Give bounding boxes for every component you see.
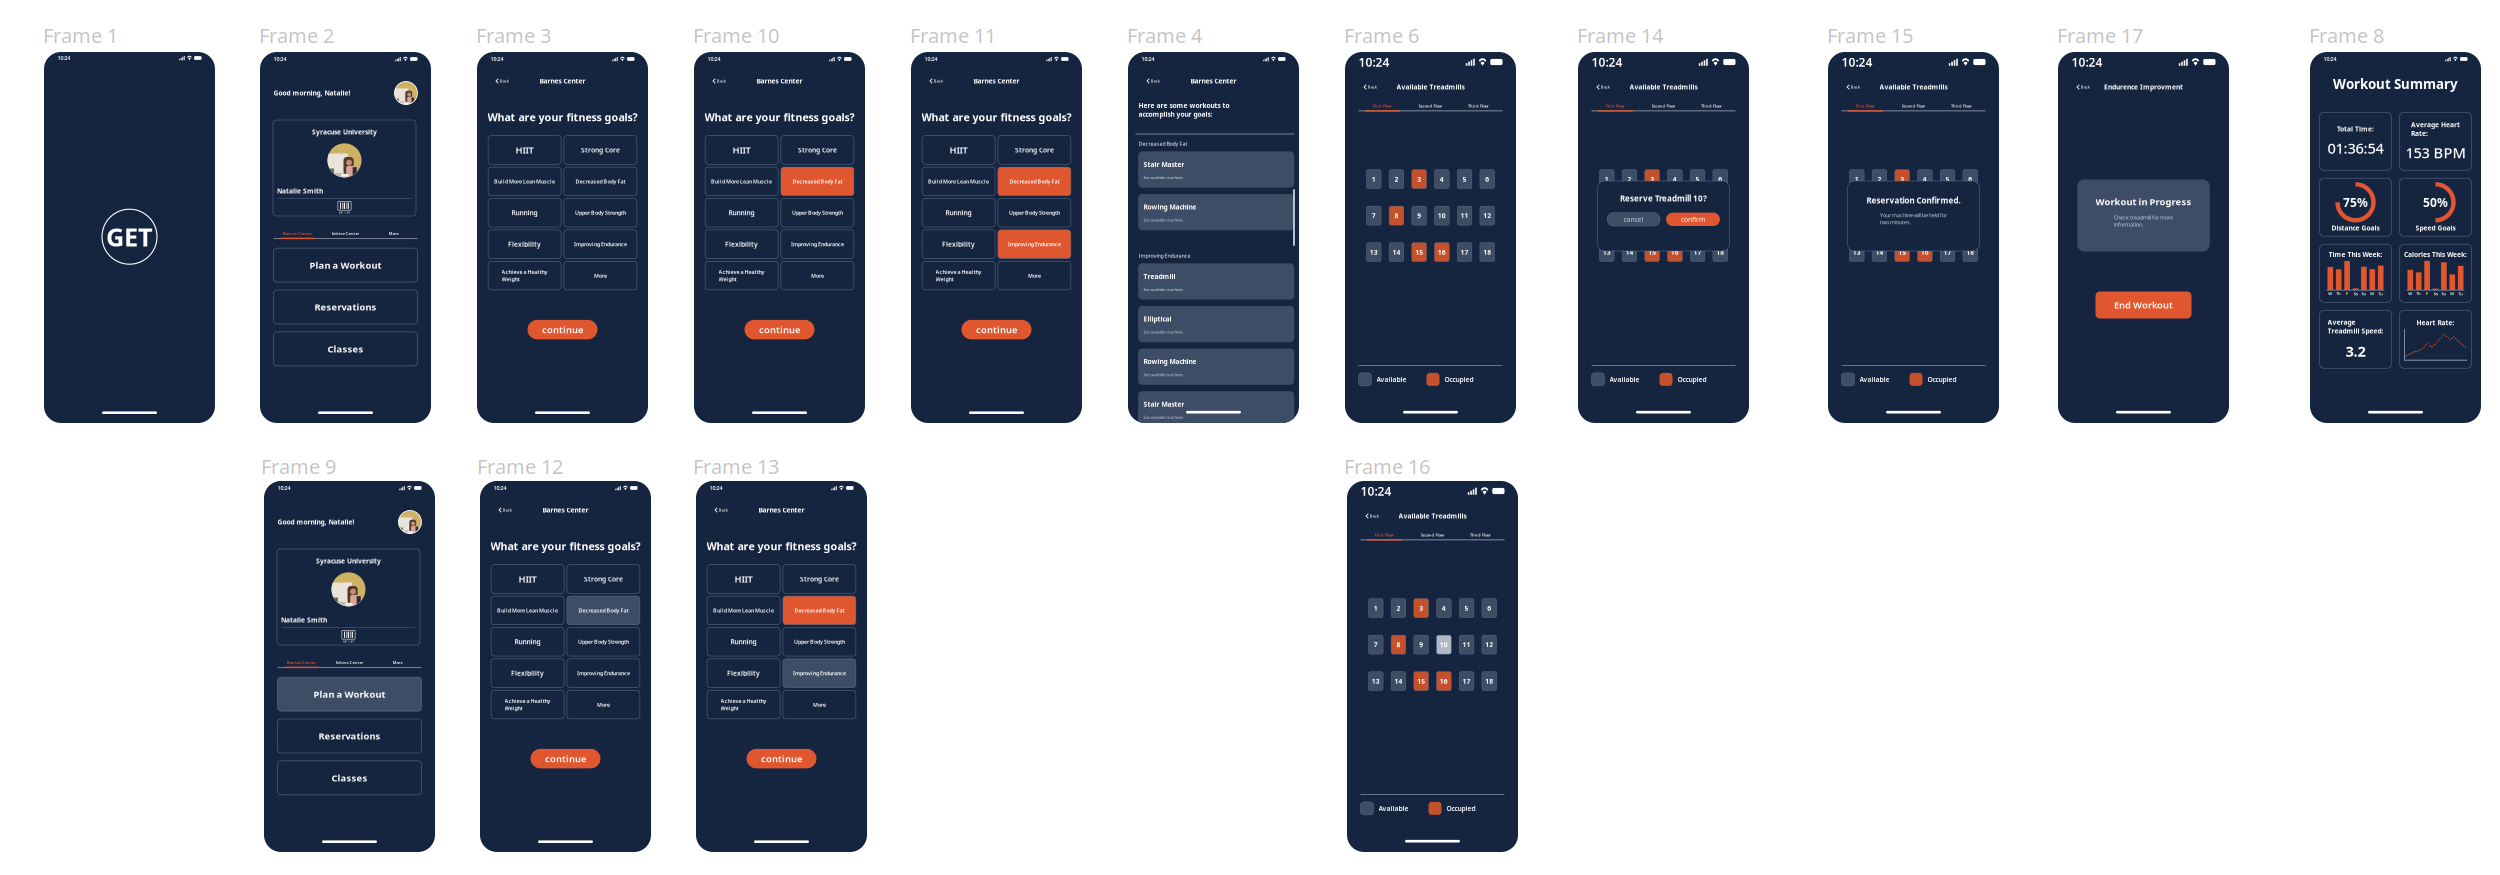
button[interactable]: 1	[1849, 170, 1864, 189]
button[interactable]: Back	[494, 76, 510, 86]
button[interactable]: 16	[1667, 243, 1682, 262]
button[interactable]: Achieve a Healthy Weight	[705, 261, 778, 290]
button[interactable]: 10	[1667, 206, 1682, 225]
button[interactable]: Third Floor	[1456, 532, 1504, 538]
button[interactable]: More	[369, 230, 417, 236]
button[interactable]: Back	[713, 505, 729, 515]
button[interactable]: 9	[1645, 206, 1659, 225]
button[interactable]: 15	[1645, 243, 1659, 262]
button[interactable]: 3	[1414, 599, 1428, 618]
button[interactable]: Stair Master	[1138, 151, 1294, 188]
button[interactable]: Classes	[277, 761, 421, 795]
button[interactable]: Back	[1145, 76, 1161, 86]
button[interactable]: HIIT	[707, 565, 780, 593]
button[interactable]: Back	[2075, 82, 2091, 92]
button[interactable]: Barnes Center	[273, 230, 321, 236]
button[interactable]: 4	[1917, 170, 1932, 189]
button[interactable]: 8	[1391, 635, 1406, 654]
button[interactable]: 14	[1872, 243, 1887, 262]
button[interactable]: Strong Core	[783, 565, 856, 593]
button[interactable]: 6	[1482, 599, 1497, 618]
button[interactable]: 10	[1436, 635, 1451, 654]
button[interactable]: 15	[1412, 243, 1426, 262]
button[interactable]: Second Floor	[1408, 532, 1456, 538]
button[interactable]: 4	[1434, 170, 1449, 189]
button[interactable]: Improving Endurance	[567, 659, 640, 687]
button[interactable]: First Floor	[1358, 103, 1406, 109]
button[interactable]: 3	[1645, 170, 1659, 189]
button[interactable]: continue	[530, 749, 600, 768]
button[interactable]: Build More Lean Muscle	[705, 167, 778, 196]
button[interactable]: More	[567, 690, 640, 719]
button[interactable]: 15	[1895, 243, 1909, 262]
button[interactable]: 1	[1366, 170, 1381, 189]
button[interactable]: Decreased Body Fat	[998, 167, 1071, 196]
button[interactable]: Profile	[394, 81, 417, 104]
button[interactable]: Rowing Machine	[1138, 348, 1294, 385]
button[interactable]: More	[998, 261, 1071, 290]
button[interactable]: 9	[1412, 206, 1426, 225]
button[interactable]: 2	[1872, 170, 1887, 189]
button[interactable]: Improving Endurance	[783, 659, 856, 687]
button[interactable]: 13	[1599, 243, 1614, 262]
button[interactable]: 7	[1366, 206, 1381, 225]
button[interactable]: HIIT	[922, 136, 995, 164]
button[interactable]: 8	[1389, 206, 1404, 225]
button[interactable]: 11	[1690, 206, 1705, 225]
button[interactable]: 7	[1368, 635, 1383, 654]
button[interactable]: Back	[1364, 511, 1380, 521]
button[interactable]: 10	[1917, 206, 1932, 225]
button[interactable]: 5	[1457, 170, 1472, 189]
button[interactable]: 5	[1690, 170, 1705, 189]
button[interactable]: 5	[1459, 599, 1474, 618]
button[interactable]: HIIT	[491, 565, 564, 593]
button[interactable]: Schine Center	[325, 659, 373, 665]
button[interactable]: Decreased Body Fat	[781, 167, 854, 196]
button[interactable]: 3	[1412, 170, 1426, 189]
button[interactable]: 15	[1414, 672, 1428, 691]
button[interactable]: 17	[1690, 243, 1705, 262]
button[interactable]: 13	[1849, 243, 1864, 262]
button[interactable]: Reservations	[273, 290, 417, 324]
button[interactable]: Back	[711, 76, 727, 86]
button[interactable]: 4	[1436, 599, 1451, 618]
button[interactable]: More	[783, 690, 856, 719]
button[interactable]: Running	[707, 627, 780, 656]
button[interactable]: Rowing Machine	[1138, 194, 1294, 230]
button[interactable]: First Floor	[1360, 532, 1408, 538]
button[interactable]: 14	[1622, 243, 1637, 262]
button[interactable]: Flexibility	[707, 659, 780, 687]
button[interactable]: 18	[1713, 243, 1728, 262]
button[interactable]: More	[373, 659, 421, 665]
button[interactable]: 12	[1713, 206, 1728, 225]
button[interactable]: 16	[1436, 672, 1451, 691]
button[interactable]: 12	[1482, 635, 1497, 654]
button[interactable]: First Floor	[1591, 103, 1639, 109]
button[interactable]: 14	[1391, 672, 1406, 691]
button[interactable]: Elliptical	[1138, 306, 1294, 342]
button[interactable]: 13	[1368, 672, 1383, 691]
button[interactable]: Improving Endurance	[781, 230, 854, 258]
button[interactable]: Decreased Body Fat	[783, 596, 856, 625]
button[interactable]: continue	[527, 320, 597, 339]
button[interactable]: 8	[1622, 206, 1637, 225]
button[interactable]: Flexibility	[491, 659, 564, 687]
button[interactable]: 3	[1895, 170, 1909, 189]
button[interactable]: Profile	[398, 510, 421, 533]
button[interactable]: continue	[744, 320, 814, 339]
button[interactable]: Back	[1362, 82, 1378, 92]
button[interactable]: 9	[1414, 635, 1428, 654]
button[interactable]: Stair Master	[1138, 391, 1294, 427]
button[interactable]: Strong Core	[781, 136, 854, 164]
button[interactable]: Second Floor	[1639, 103, 1687, 109]
button[interactable]: Schine Center	[321, 230, 369, 236]
button[interactable]: Improving Endurance	[998, 230, 1071, 258]
button[interactable]: Upper Body Strength	[781, 198, 854, 227]
button[interactable]: 4	[1667, 170, 1682, 189]
button[interactable]: 16	[1434, 243, 1449, 262]
button[interactable]: Back	[928, 76, 944, 86]
button[interactable]: 12	[1480, 206, 1495, 225]
button[interactable]: continue	[961, 320, 1031, 339]
button[interactable]: Back	[1845, 82, 1861, 92]
button[interactable]: Build More Lean Muscle	[707, 596, 780, 625]
